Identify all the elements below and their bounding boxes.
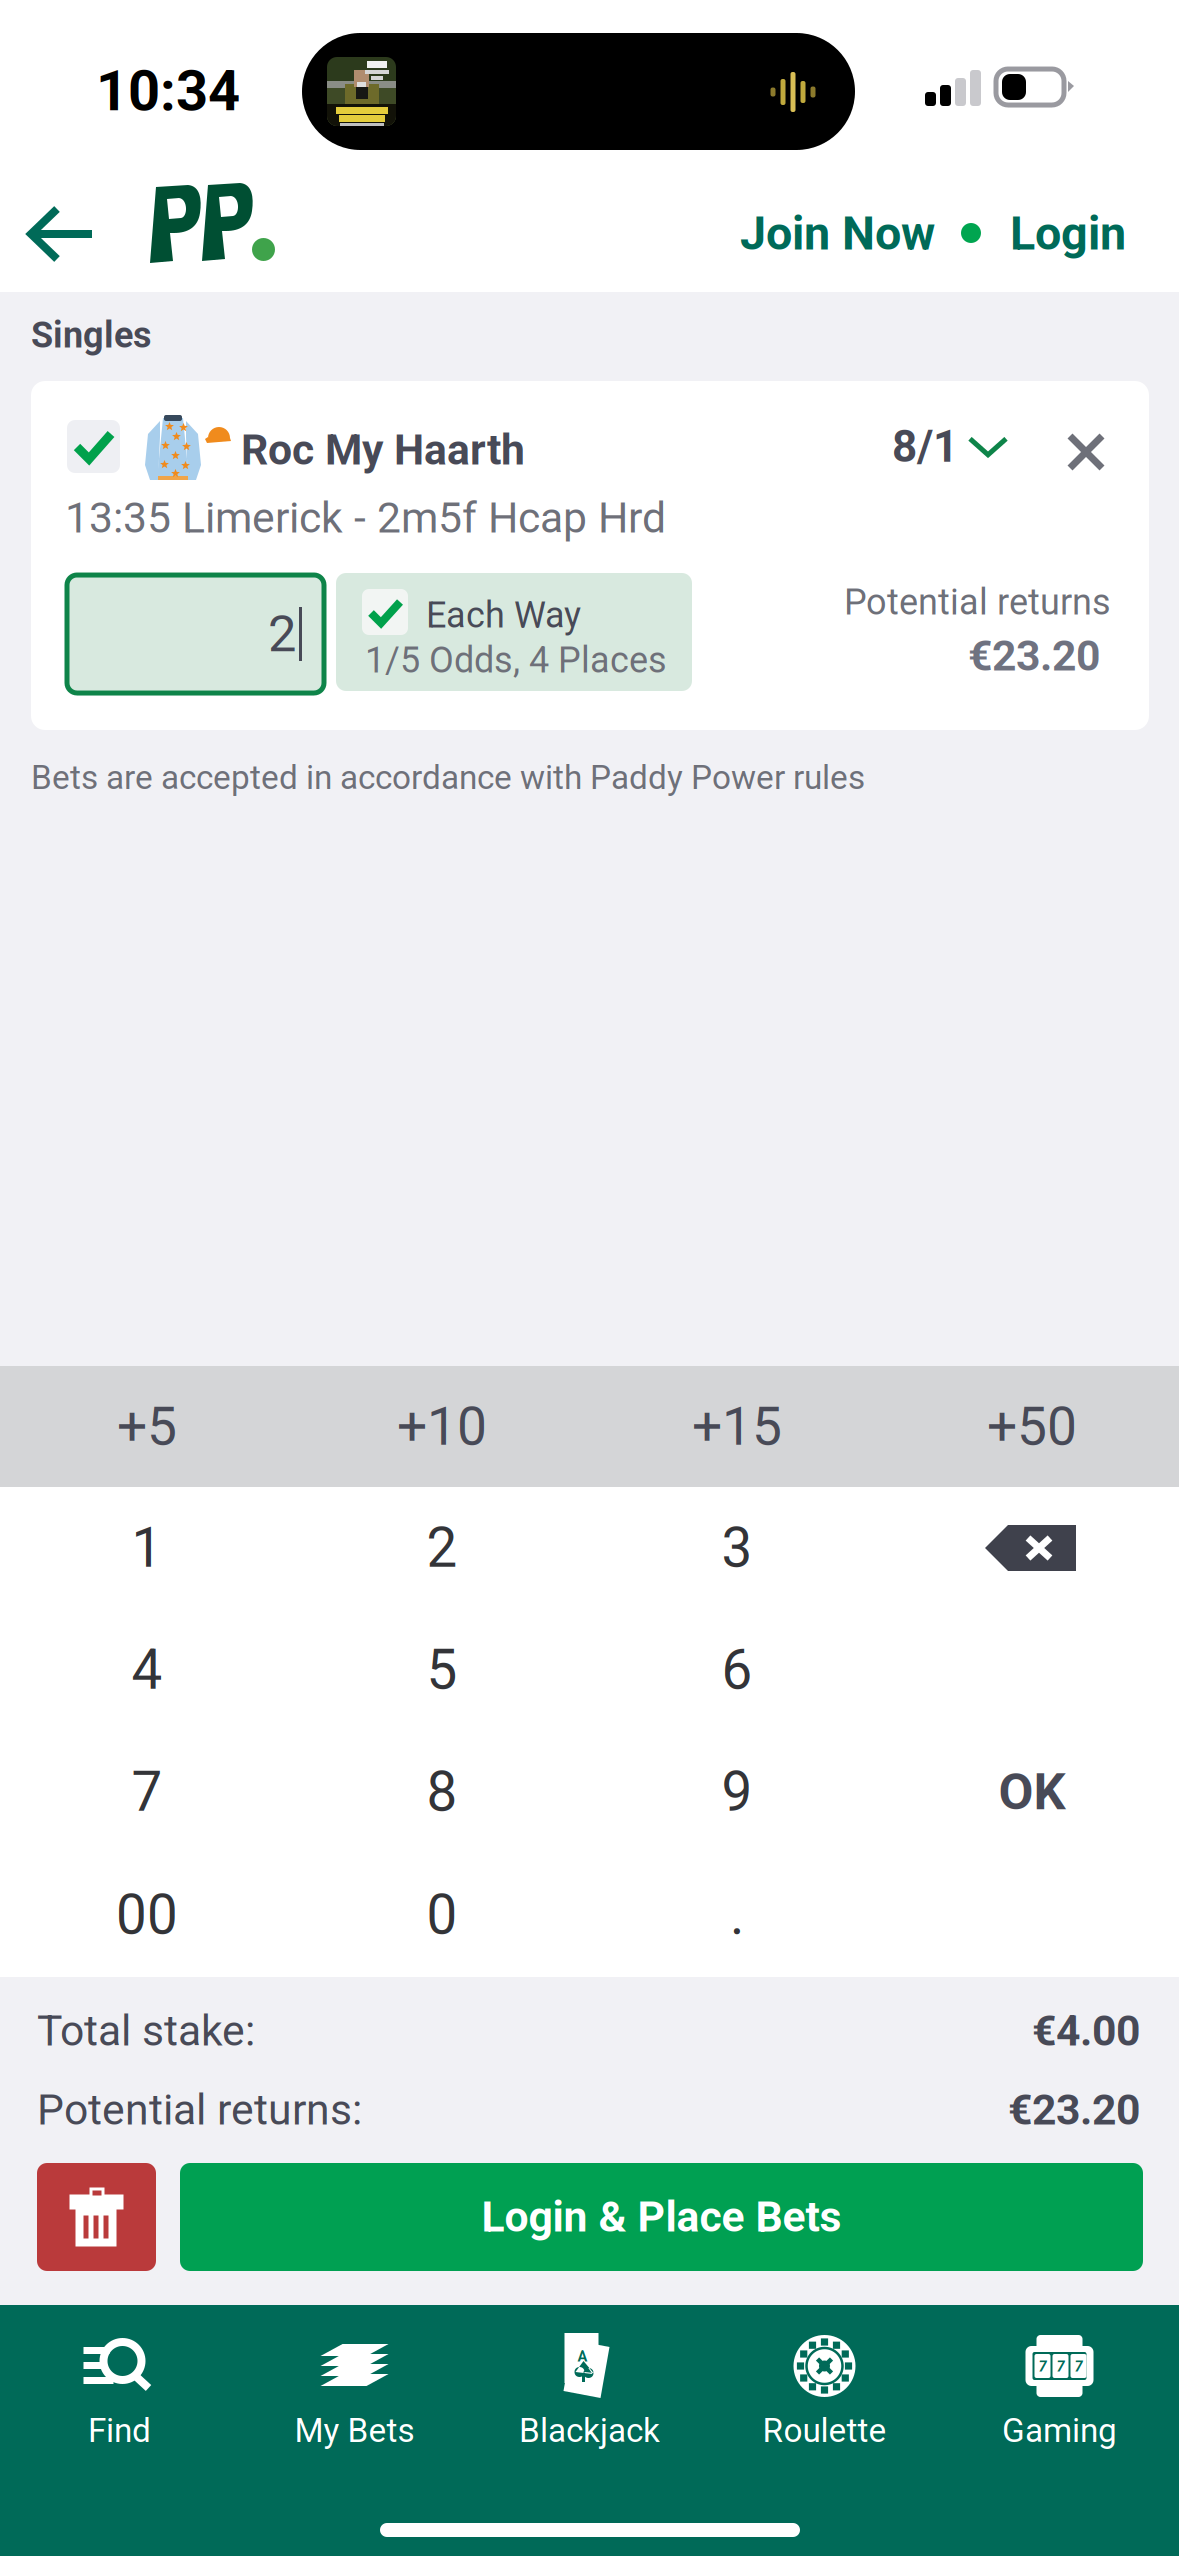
staticText: 13:35 Limerick - 2m5f Hcap Hrd: [65, 493, 666, 543]
staticText: Roc My Haarth: [241, 425, 525, 475]
button[interactable]: Login: [999, 175, 1137, 292]
staticText: 7: [1056, 2358, 1064, 2375]
staticText: A: [577, 2348, 587, 2365]
button[interactable]: +15: [589, 1366, 884, 1487]
staticText: Login & Place Bets: [481, 2192, 841, 2242]
button[interactable]: 7: [0, 1731, 294, 1853]
button[interactable]: Join Now: [729, 175, 946, 292]
button[interactable]: 8: [294, 1731, 589, 1853]
staticText: 5: [426, 1638, 457, 1702]
staticText: 7: [1038, 2358, 1046, 2375]
staticText: 2: [426, 1516, 457, 1580]
staticText: Singles: [31, 314, 151, 356]
staticText: Gaming: [1002, 2411, 1117, 2450]
staticText: €23.20: [968, 631, 1100, 681]
staticText: .: [730, 1883, 744, 1947]
staticText: 4: [131, 1638, 162, 1702]
staticText: +50: [987, 1395, 1077, 1458]
staticText: Find: [88, 2411, 151, 2450]
staticText: 3: [721, 1516, 752, 1580]
staticText: 1/5 Odds, 4 Places: [365, 639, 667, 681]
button[interactable]: Selection enabled: [67, 420, 120, 473]
staticText: Bets are accepted in accordance with Pad…: [31, 758, 865, 797]
staticText: +5: [117, 1395, 177, 1458]
button[interactable]: Each Way: [336, 573, 692, 691]
button[interactable]: 5: [294, 1609, 589, 1731]
staticText: Potential returns: [844, 581, 1111, 623]
button[interactable]: 4: [0, 1609, 294, 1731]
button[interactable]: .: [589, 1854, 884, 1976]
button[interactable]: 7: [942, 2337, 1177, 2487]
staticText: €23.20: [1008, 2085, 1140, 2135]
staticText: 7: [131, 1760, 162, 1824]
button[interactable]: Remove selection: [1049, 415, 1123, 489]
staticText: 1: [131, 1516, 162, 1580]
button[interactable]: Find: [2, 2337, 237, 2487]
button[interactable]: Login & Place Bets: [180, 2163, 1143, 2271]
button[interactable]: 00: [0, 1854, 294, 1976]
button[interactable]: 6: [589, 1609, 884, 1731]
staticText: 00: [116, 1883, 178, 1947]
button[interactable]: Roulette: [707, 2337, 942, 2487]
staticText: Each Way: [426, 594, 581, 636]
staticText: +10: [397, 1395, 487, 1458]
staticText: 2: [268, 604, 296, 664]
button[interactable]: +10: [294, 1366, 589, 1487]
staticText: Roulette: [762, 2411, 886, 2450]
staticText: 0: [426, 1883, 457, 1947]
staticText: Login: [1010, 206, 1126, 261]
button[interactable]: A: [472, 2337, 707, 2487]
staticText: 9: [721, 1760, 752, 1824]
button[interactable]: Clear betslip: [37, 2163, 156, 2271]
button[interactable]: Back: [0, 175, 122, 293]
button[interactable]: 2: [67, 575, 324, 693]
staticText: 8/1: [892, 421, 958, 473]
staticText: Total stake:: [37, 2006, 255, 2056]
button[interactable]: Delete: [884, 1487, 1179, 1609]
staticText: My Bets: [294, 2411, 414, 2450]
staticText: 7: [1074, 2358, 1082, 2375]
button[interactable]: 9: [589, 1731, 884, 1853]
button[interactable]: +50: [884, 1366, 1179, 1487]
staticText: Potential returns:: [37, 2085, 362, 2135]
button[interactable]: 1: [0, 1487, 294, 1609]
staticText: 8: [426, 1760, 457, 1824]
button[interactable]: My Bets: [237, 2337, 472, 2487]
button[interactable]: 0: [294, 1854, 589, 1976]
staticText: €4.00: [1032, 2006, 1140, 2056]
staticText: Join Now: [740, 206, 935, 261]
staticText: 6: [721, 1638, 752, 1702]
staticText: +15: [692, 1395, 782, 1458]
staticText: 10:34: [96, 58, 240, 124]
button[interactable]: 8/1: [892, 405, 1009, 489]
staticText: Blackjack: [519, 2411, 660, 2450]
button[interactable]: 3: [589, 1487, 884, 1609]
button[interactable]: OK: [884, 1731, 1179, 1853]
button[interactable]: +5: [0, 1366, 294, 1487]
button[interactable]: 2: [294, 1487, 589, 1609]
staticText: OK: [998, 1762, 1065, 1822]
